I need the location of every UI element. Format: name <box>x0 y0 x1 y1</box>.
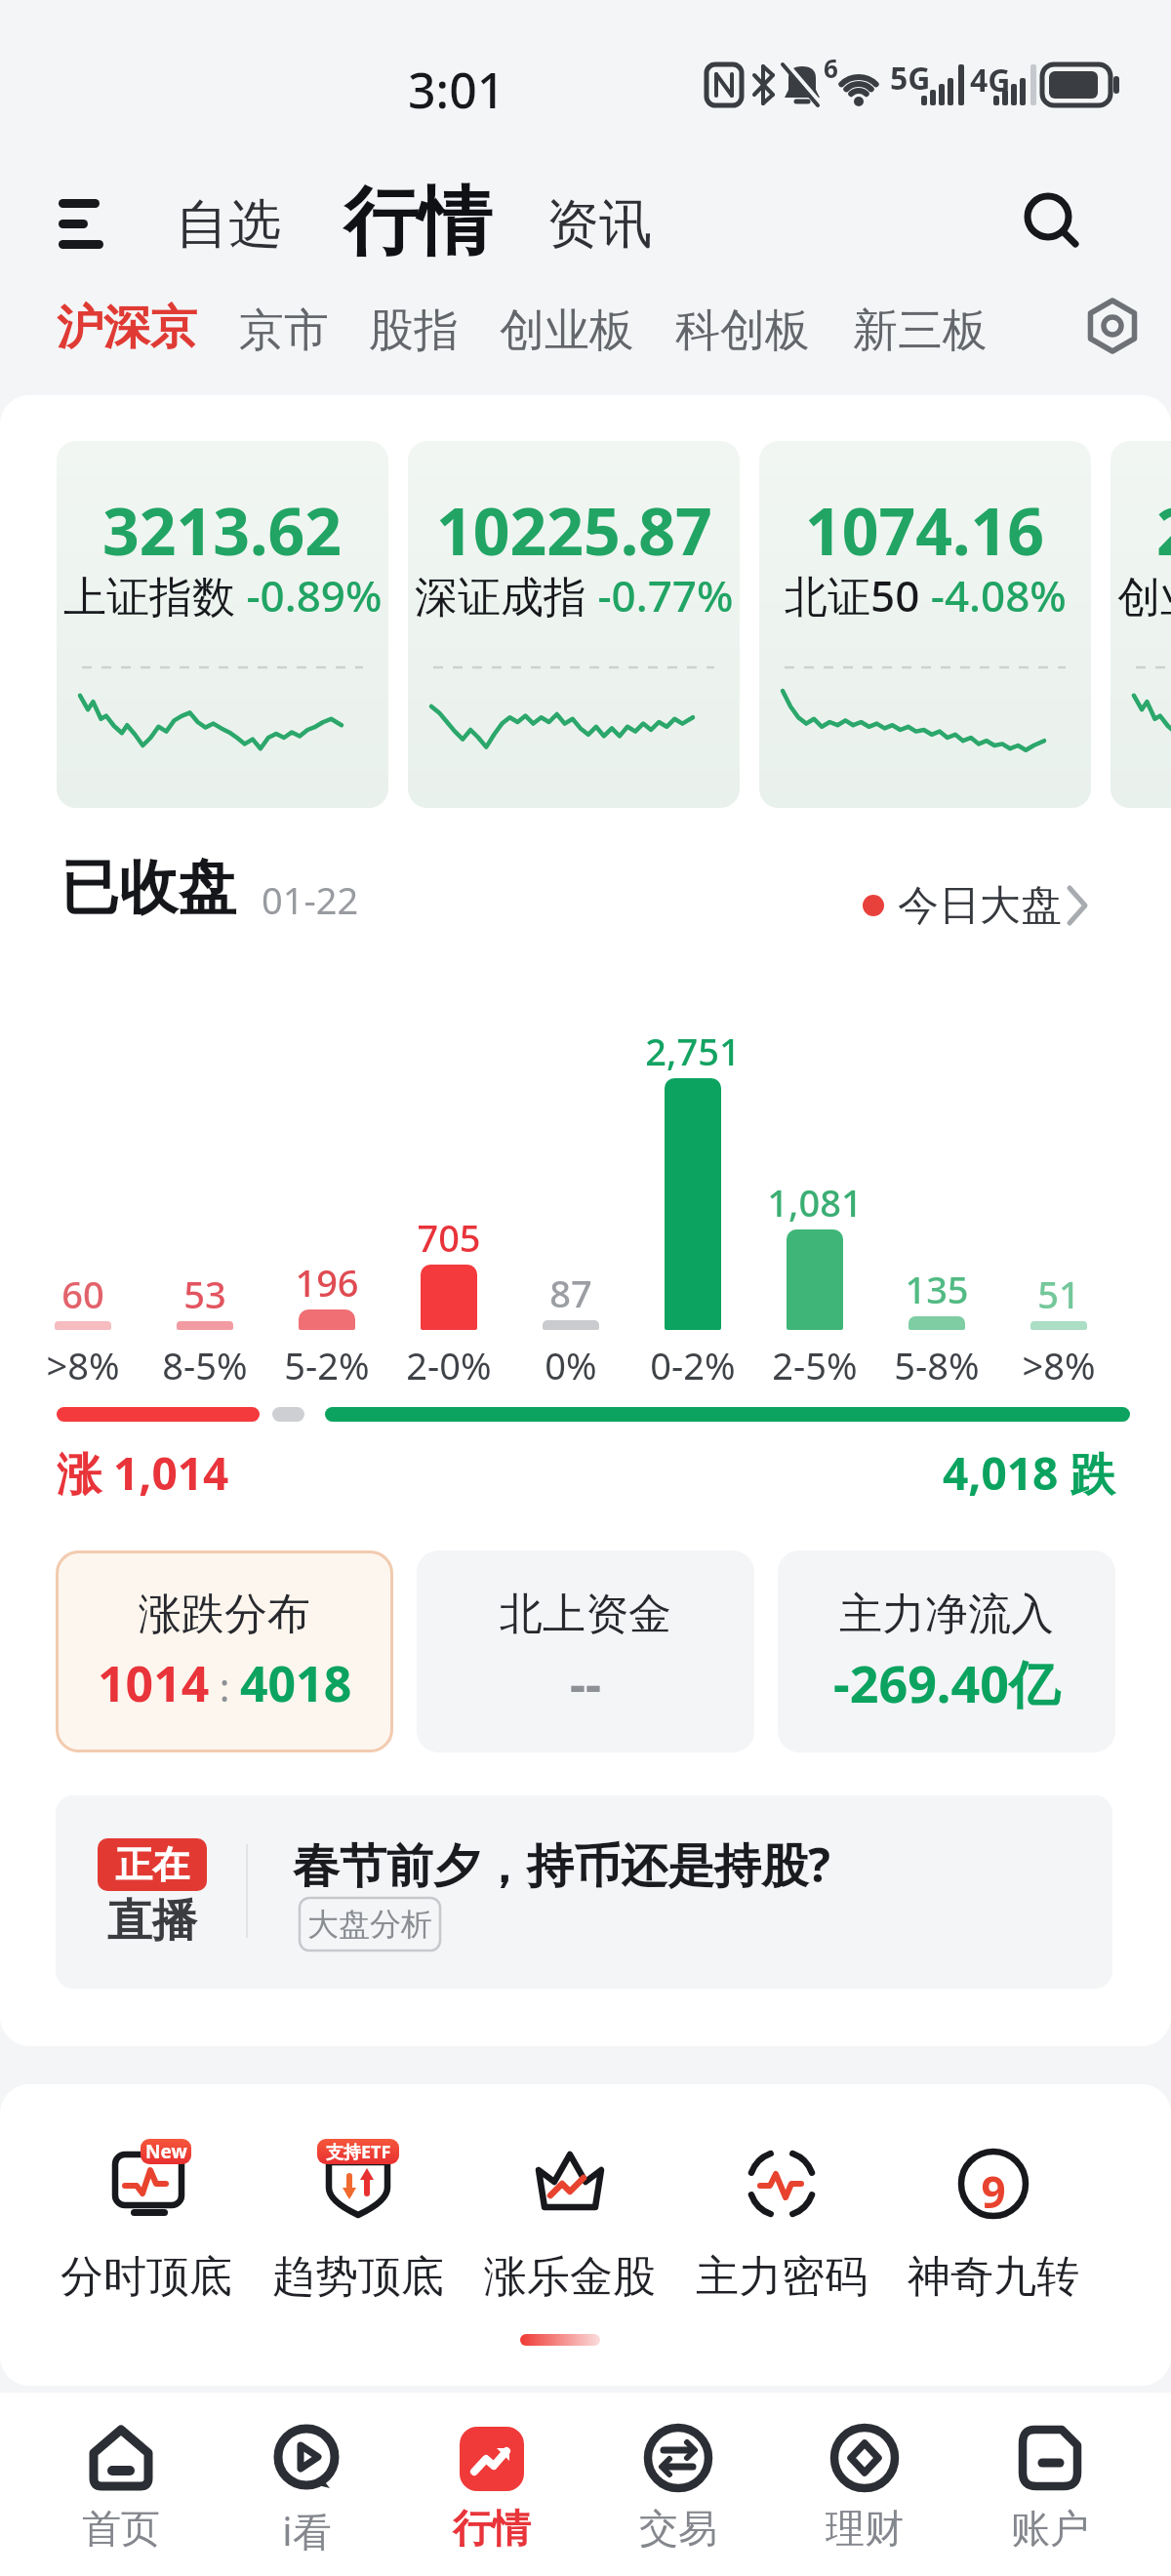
staticText: 上证指数 -0.89% <box>63 566 383 624</box>
staticText: 87 <box>549 1268 592 1318</box>
staticText: 5-8% <box>894 1340 980 1390</box>
button[interactable]: 科创板 <box>675 302 810 359</box>
button[interactable]: 京市 <box>239 302 329 359</box>
staticText: 01-22 <box>262 874 359 925</box>
staticText: 分时顶底 <box>61 2250 232 2304</box>
button[interactable]: 行情 <box>343 176 492 269</box>
staticText: 涨乐金股 <box>484 2250 656 2304</box>
staticText: 5-2% <box>284 1340 370 1390</box>
button[interactable]: 自选 <box>176 191 281 258</box>
staticText: 4,018 跌 <box>943 1442 1115 1504</box>
staticText: 196 <box>295 1257 359 1308</box>
staticText: 4G <box>970 59 1011 101</box>
staticText: i看 <box>282 2504 332 2557</box>
staticText: -- <box>570 1650 601 1716</box>
staticText: 支持ETF <box>326 2140 391 2164</box>
staticText: 自选 <box>176 191 281 258</box>
staticText: 3213.62 <box>102 486 343 574</box>
staticText: 科创板 <box>675 302 810 359</box>
staticText: 已收盘 <box>61 851 236 925</box>
staticText: 行情 <box>453 2504 531 2553</box>
staticText: 705 <box>417 1212 481 1263</box>
button[interactable] <box>901 2127 1086 2322</box>
staticText: 首页 <box>82 2504 160 2553</box>
staticText: 10225.87 <box>436 486 712 574</box>
staticText: 神奇九转 <box>908 2250 1079 2304</box>
staticText: 2,751 <box>645 1026 741 1076</box>
button[interactable]: 主力净流入 <box>778 1550 1115 1752</box>
staticText: 理财 <box>826 2504 904 2553</box>
button[interactable] <box>839 868 1103 943</box>
staticText: 股指 <box>369 302 459 359</box>
button[interactable]: 股指 <box>369 302 459 359</box>
staticText: 沪深京 <box>57 299 197 357</box>
staticText: 创业板 <box>500 302 634 359</box>
staticText: 春节前夕，持币还是持股? <box>293 1832 830 1897</box>
staticText: 京市 <box>239 302 329 359</box>
staticText: 大盘分析 <box>307 1905 432 1944</box>
staticText: 涨 1,014 <box>57 1442 229 1504</box>
button[interactable]: 沪深京 <box>57 299 197 357</box>
staticText: 趋势顶底 <box>272 2250 444 2304</box>
staticText: 主力密码 <box>696 2250 868 2304</box>
staticText: 行情 <box>343 176 492 269</box>
staticText: 3:01 <box>408 57 505 123</box>
button[interactable] <box>689 2127 874 2322</box>
staticText: 1,081 <box>767 1177 863 1228</box>
staticText: 正在 <box>115 1841 189 1888</box>
button[interactable] <box>43 2400 199 2566</box>
button[interactable]: 涨跌分布 <box>56 1550 393 1752</box>
button[interactable] <box>49 187 113 256</box>
button[interactable] <box>1017 185 1091 260</box>
staticText: 5G <box>890 57 931 100</box>
staticText: 今日大盘 <box>898 880 1062 932</box>
staticText: 2-0% <box>406 1340 492 1390</box>
button[interactable] <box>414 2400 570 2566</box>
button[interactable]: 资讯 <box>546 191 652 258</box>
staticText: 1074.16 <box>805 486 1045 574</box>
staticText: 2060.63 <box>1156 486 1171 574</box>
staticText: 直播 <box>107 1893 197 1950</box>
button[interactable] <box>972 2400 1128 2566</box>
button[interactable] <box>265 2127 451 2322</box>
button[interactable] <box>477 2127 663 2322</box>
button[interactable] <box>600 2400 756 2566</box>
staticText: 资讯 <box>546 191 652 258</box>
staticText: 1014 : 4018 <box>98 1650 352 1716</box>
staticText: 创业板指 -1.13% <box>1117 566 1171 624</box>
staticText: 交易 <box>639 2504 717 2553</box>
staticText: 51 <box>1037 1268 1080 1319</box>
button[interactable]: 1074.16 <box>759 441 1091 808</box>
button[interactable] <box>787 2400 943 2566</box>
staticText: -269.40亿 <box>833 1648 1060 1717</box>
button[interactable]: 正在 <box>56 1795 1112 1989</box>
staticText: 北证50 -4.08% <box>785 566 1067 624</box>
button[interactable]: 创业板 <box>500 302 634 359</box>
staticText: 涨跌分布 <box>139 1588 310 1641</box>
button[interactable]: 3213.62 <box>57 441 388 808</box>
staticText: 0-2% <box>650 1340 736 1390</box>
staticText: 60 <box>61 1268 104 1319</box>
staticText: 8-5% <box>162 1340 248 1390</box>
staticText: 深证成指 -0.77% <box>415 566 734 624</box>
staticText: 6 <box>824 51 838 85</box>
staticText: 135 <box>905 1264 969 1314</box>
staticText: >8% <box>1022 1340 1096 1390</box>
button[interactable]: 2060.63 <box>1110 441 1171 808</box>
button[interactable]: 10225.87 <box>408 441 740 808</box>
button[interactable] <box>1081 293 1144 355</box>
staticText: 账户 <box>1011 2504 1089 2553</box>
button[interactable] <box>54 2127 239 2322</box>
staticText: 0% <box>545 1340 597 1390</box>
staticText: New <box>145 2139 187 2164</box>
staticText: 9 <box>981 2162 1006 2221</box>
button[interactable]: 北上资金 <box>417 1550 754 1752</box>
button[interactable]: 新三板 <box>853 302 988 359</box>
staticText: >8% <box>46 1340 120 1390</box>
staticText: 新三板 <box>853 302 988 359</box>
staticText: 北上资金 <box>500 1588 671 1641</box>
button[interactable] <box>228 2400 384 2566</box>
staticText: 主力净流入 <box>839 1588 1054 1641</box>
staticText: 2-5% <box>772 1340 858 1390</box>
staticText: 53 <box>183 1268 226 1319</box>
